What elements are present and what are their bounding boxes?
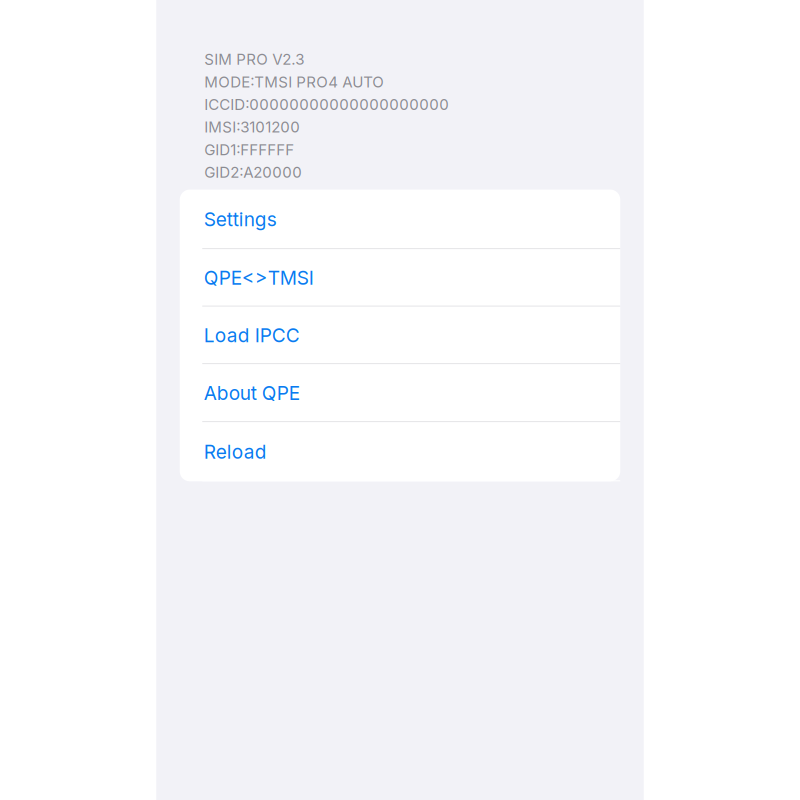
staticText: Settings <box>204 208 277 231</box>
staticText: SIM PRO V2.3 <box>204 50 304 68</box>
staticText: QPE<>TMSI <box>204 266 314 289</box>
button[interactable]: Load IPCC <box>180 307 620 364</box>
staticText: GID1:FFFFFF <box>204 141 294 159</box>
button[interactable]: Settings <box>180 190 620 249</box>
button[interactable]: QPE<>TMSI <box>180 249 620 307</box>
staticText: MODE:TMSI PRO4 AUTO <box>204 73 384 91</box>
staticText: Reload <box>204 440 267 463</box>
staticText: IMSI:3101200 <box>204 118 300 136</box>
staticText: GID2:A20000 <box>204 163 302 181</box>
staticText: ICCID:00000000000000000000 <box>204 95 449 114</box>
staticText: Load IPCC <box>204 324 300 347</box>
button[interactable]: Reload <box>180 422 620 481</box>
button[interactable]: About QPE <box>180 364 620 422</box>
staticText: About QPE <box>204 382 300 405</box>
